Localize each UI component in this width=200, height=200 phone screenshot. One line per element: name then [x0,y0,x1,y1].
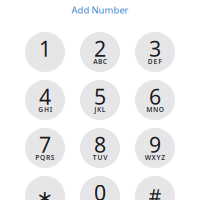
button[interactable]: 3 [135,32,175,72]
staticText: 8 [94,130,106,159]
button[interactable]: 5 [80,80,120,120]
staticText: 3 [149,34,161,63]
staticText: 5 [94,82,106,111]
button[interactable]: 8 [80,128,120,168]
button[interactable]: Add Number [0,0,200,20]
staticText: GHI [38,105,52,114]
button[interactable]: 9 [135,128,175,168]
staticText: 4 [39,82,51,111]
staticText: TUV [93,153,107,162]
button[interactable]: 7 [25,128,65,168]
staticText: # [148,182,161,200]
staticText: DEF [148,57,162,66]
staticText: WXYZ [145,153,165,162]
staticText: 9 [149,130,161,159]
staticText: 0 [94,178,106,200]
staticText: JKL [94,105,106,114]
button[interactable]: ∗ [25,176,65,200]
staticText: PQRS [35,153,55,162]
staticText: 6 [149,82,161,111]
staticText: 2 [94,34,106,63]
staticText: MNO [146,105,164,114]
button[interactable]: 2 [80,32,120,72]
button[interactable]: 6 [135,80,175,120]
staticText: 1 [39,34,51,63]
staticText: ∗ [36,186,53,200]
staticText: 7 [39,130,51,159]
button[interactable]: 0 [80,176,120,200]
staticText: Add Number [71,4,128,16]
button[interactable]: # [135,176,175,200]
staticText: ABC [93,57,107,66]
button[interactable]: 4 [25,80,65,120]
button[interactable]: 1 [25,32,65,72]
